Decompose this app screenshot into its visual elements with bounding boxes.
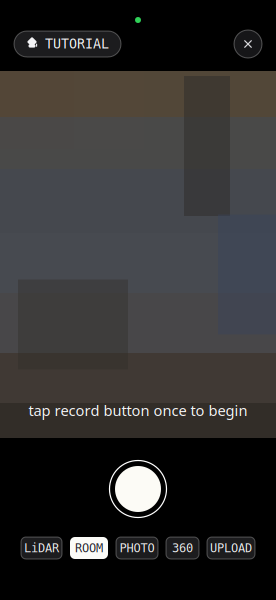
- staticText: ROOM: [75, 541, 103, 555]
- staticText: TUTORIAL: [45, 36, 109, 51]
- button[interactable]: LiDAR: [21, 537, 62, 559]
- button[interactable]: Close: [234, 30, 262, 58]
- staticText: 360: [172, 541, 193, 555]
- staticText: LiDAR: [24, 541, 59, 555]
- button[interactable]: PHOTO: [116, 537, 158, 559]
- button[interactable]: ROOM: [70, 537, 108, 559]
- button[interactable]: TUTORIAL: [14, 31, 121, 57]
- button[interactable]: UPLOAD: [207, 537, 255, 559]
- staticText: UPLOAD: [210, 541, 252, 555]
- button[interactable]: 360: [166, 537, 199, 559]
- staticText: tap record button once to begin: [28, 400, 247, 420]
- staticText: PHOTO: [119, 541, 154, 555]
- button[interactable]: Record: [108, 459, 168, 519]
